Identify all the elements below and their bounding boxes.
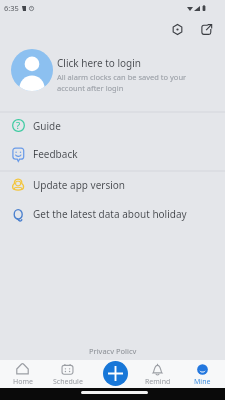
button[interactable]: Mine	[180, 363, 225, 387]
staticText: ?	[16, 119, 21, 132]
button[interactable]: Feedback	[0, 139, 225, 168]
staticText: Remind	[145, 377, 171, 387]
staticText: Click here to login	[57, 56, 142, 70]
button[interactable]: Settings	[167, 19, 187, 39]
button[interactable]: Add alarm	[103, 361, 128, 386]
button[interactable]: Share	[196, 19, 216, 39]
staticText: All alarm clocks can be saved to your ac…	[57, 72, 209, 93]
staticText: 6:35	[4, 3, 19, 13]
staticText: Feedback	[33, 147, 78, 161]
button[interactable]: Update app version	[0, 170, 225, 199]
staticText: Mine	[194, 377, 211, 387]
button[interactable]: Schedule	[45, 363, 90, 387]
button[interactable]: Home	[0, 363, 45, 387]
button[interactable]: Get the latest data about holiday	[0, 199, 225, 228]
staticText: Get the latest data about holiday	[33, 207, 187, 221]
staticText: Schedule	[53, 377, 83, 387]
button[interactable]: Remind	[135, 363, 180, 387]
button[interactable]: Privacy Policy	[87, 344, 139, 356]
staticText: Privacy Policy	[89, 346, 137, 354]
button[interactable]: ?	[0, 111, 225, 140]
staticText: Guide	[33, 119, 61, 133]
staticText: Update app version	[33, 178, 126, 192]
staticText: Home	[13, 377, 33, 387]
button[interactable]: Click here to login	[0, 44, 225, 106]
